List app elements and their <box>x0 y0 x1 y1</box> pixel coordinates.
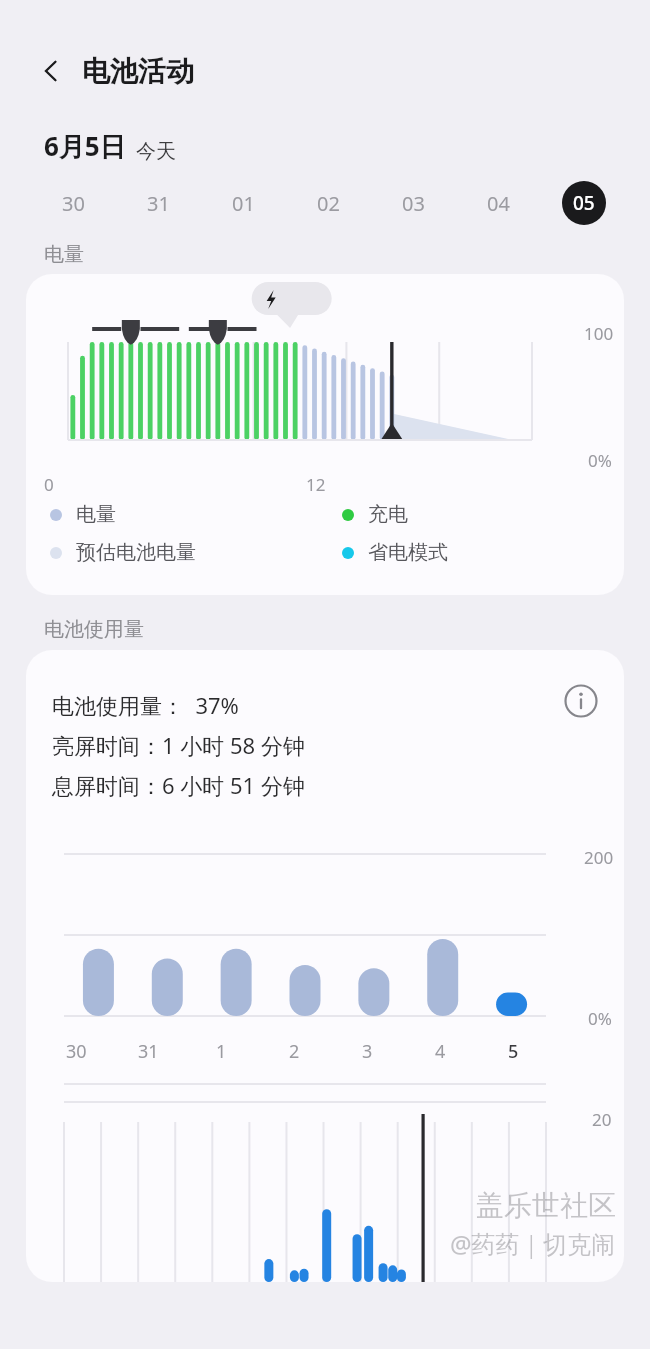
staticText: 盖乐世社区 <box>476 1188 616 1223</box>
staticText: 31 <box>147 190 170 217</box>
staticText: 05 <box>573 190 595 216</box>
staticText: 4 <box>435 1039 446 1064</box>
button[interactable]: 04 <box>456 178 541 228</box>
staticText: 省电模式 <box>368 540 448 565</box>
button[interactable]: 05 <box>541 178 626 228</box>
staticText: 30 <box>62 190 85 217</box>
button[interactable]: 31 <box>116 178 201 228</box>
staticText: 0 <box>44 473 54 496</box>
staticText: 100 <box>584 322 614 345</box>
staticText: 电池使用量 <box>44 617 144 642</box>
staticText: 亮屏时间：1 小时 58 分钟 <box>52 730 305 760</box>
staticText: 02 <box>317 190 340 217</box>
staticText: 电池活动 <box>82 54 194 89</box>
staticText: 30 <box>66 1039 87 1064</box>
staticText: 20 <box>592 1108 612 1131</box>
button[interactable]: 30 <box>30 178 116 228</box>
staticText: 01 <box>232 190 255 217</box>
staticText: 12 <box>306 473 326 496</box>
staticText: 31 <box>138 1039 159 1064</box>
staticText: 电量 <box>76 502 116 527</box>
button[interactable]: 03 <box>371 178 456 228</box>
button[interactable]: Back <box>28 48 74 94</box>
button[interactable]: Info <box>560 680 602 722</box>
staticText: 今天 <box>136 139 176 164</box>
staticText: 03 <box>402 190 425 217</box>
staticText: 电池使用量： 37% <box>52 690 239 720</box>
staticText: 0% <box>588 449 612 472</box>
button[interactable]: 02 <box>286 178 371 228</box>
button[interactable]: 省电模式 <box>342 540 448 565</box>
staticText: @药药｜切克闹 <box>450 1227 616 1260</box>
staticText: 息屏时间：6 小时 51 分钟 <box>52 770 305 800</box>
button[interactable]: 充电 <box>342 502 408 527</box>
staticText: 5 <box>508 1039 519 1064</box>
staticText: 0% <box>588 1007 612 1030</box>
staticText: 充电 <box>368 502 408 527</box>
staticText: 04 <box>487 190 510 217</box>
button[interactable]: 预估电池电量 <box>50 540 196 565</box>
staticText: 电量 <box>44 242 84 267</box>
staticText: 1 <box>216 1039 227 1064</box>
staticText: 3 <box>362 1039 373 1064</box>
staticText: 6月5日 <box>44 128 126 164</box>
button[interactable]: 01 <box>201 178 286 228</box>
button[interactable]: 电量 <box>50 502 116 527</box>
staticText: 2 <box>289 1039 300 1064</box>
staticText: 200 <box>584 846 614 869</box>
staticText: 预估电池电量 <box>76 540 196 565</box>
